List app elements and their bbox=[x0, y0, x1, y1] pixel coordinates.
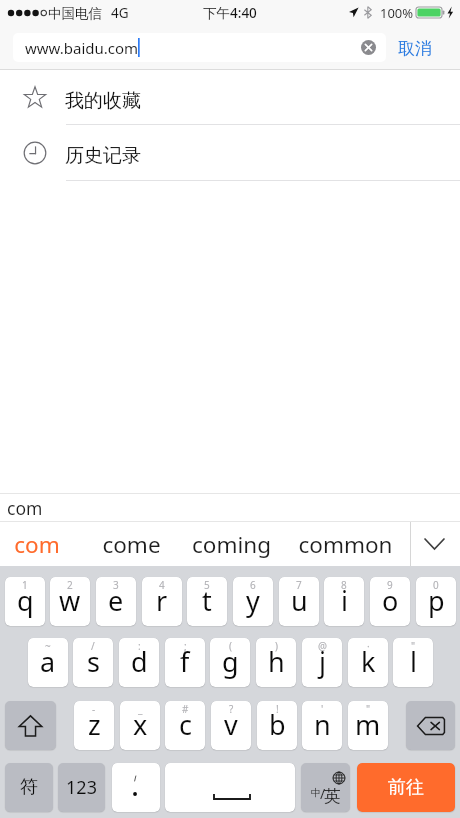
staticText: v bbox=[224, 706, 238, 743]
staticText: g bbox=[222, 643, 239, 680]
button[interactable]: 0 bbox=[416, 577, 456, 626]
button[interactable]: Shift bbox=[5, 701, 56, 750]
staticText: ( bbox=[229, 639, 232, 653]
staticText: 123 bbox=[66, 775, 97, 800]
staticText: · bbox=[367, 639, 370, 653]
staticText: s bbox=[87, 643, 100, 680]
staticText: 中 bbox=[311, 786, 321, 799]
button[interactable]: " bbox=[348, 701, 388, 750]
button[interactable]: " bbox=[393, 638, 433, 687]
button[interactable]: 前往 bbox=[357, 763, 455, 812]
button[interactable]: _ bbox=[120, 701, 160, 750]
staticText: ! bbox=[276, 702, 279, 716]
button[interactable]: 7 bbox=[279, 577, 319, 626]
staticText: 8 bbox=[341, 578, 347, 592]
button[interactable]: ? bbox=[211, 701, 251, 750]
button[interactable]: 5 bbox=[187, 577, 227, 626]
staticText: r bbox=[156, 582, 168, 619]
button[interactable]: come bbox=[71, 522, 191, 566]
staticText: d bbox=[131, 643, 148, 680]
staticText: 取消 bbox=[398, 38, 432, 59]
staticText: j bbox=[319, 643, 326, 680]
staticText: " bbox=[366, 702, 371, 716]
button[interactable]: : bbox=[119, 638, 159, 687]
button[interactable]: 我的收藏 bbox=[0, 70, 460, 125]
staticText: z bbox=[88, 706, 101, 743]
staticText: x bbox=[133, 706, 148, 743]
button[interactable]: 123 bbox=[58, 763, 105, 812]
button[interactable]: More candidates bbox=[411, 522, 460, 566]
button[interactable]: 符 bbox=[5, 763, 53, 812]
staticText: : bbox=[138, 639, 141, 653]
staticText: _ bbox=[138, 702, 143, 716]
button[interactable]: 2 bbox=[50, 577, 90, 626]
staticText: t bbox=[202, 582, 212, 619]
staticText: " bbox=[411, 639, 416, 653]
staticText: m bbox=[355, 706, 381, 743]
button[interactable]: ! bbox=[257, 701, 297, 750]
staticText: 2 bbox=[67, 578, 73, 592]
button[interactable]: ( bbox=[210, 638, 250, 687]
staticText: p bbox=[428, 582, 445, 619]
button[interactable]: 取消 bbox=[396, 32, 434, 65]
staticText: ) bbox=[275, 639, 278, 653]
button[interactable]: / bbox=[73, 638, 113, 687]
staticText: 英 bbox=[324, 786, 341, 807]
staticText: 6 bbox=[250, 578, 256, 592]
staticText: n bbox=[314, 706, 331, 743]
button[interactable]: # bbox=[165, 701, 205, 750]
staticText: 9 bbox=[387, 578, 393, 592]
staticText: 4 bbox=[159, 578, 165, 592]
button[interactable]: Switch input language bbox=[301, 763, 350, 812]
staticText: ~ bbox=[45, 639, 51, 653]
staticText: e bbox=[108, 582, 124, 619]
button[interactable]: ) bbox=[256, 638, 296, 687]
button[interactable]: @ bbox=[302, 638, 342, 687]
button[interactable]: - bbox=[74, 701, 114, 750]
button[interactable]: Period bbox=[112, 763, 160, 812]
staticText: f bbox=[180, 643, 190, 680]
staticText: q bbox=[17, 582, 34, 619]
staticText: common bbox=[298, 529, 393, 560]
staticText: 5 bbox=[204, 578, 210, 592]
button[interactable]: 6 bbox=[233, 577, 273, 626]
button[interactable]: coming bbox=[171, 522, 291, 566]
button[interactable]: ; bbox=[165, 638, 205, 687]
staticText: 符 bbox=[20, 776, 38, 799]
button[interactable]: 4 bbox=[142, 577, 182, 626]
button[interactable]: 3 bbox=[96, 577, 136, 626]
button[interactable]: common bbox=[285, 522, 405, 566]
button[interactable]: Space bbox=[165, 763, 295, 812]
button[interactable]: 历史记录 bbox=[0, 125, 460, 181]
staticText: 历史记录 bbox=[65, 144, 141, 168]
staticText: ' bbox=[321, 702, 324, 716]
button[interactable]: 8 bbox=[324, 577, 364, 626]
staticText: come bbox=[102, 529, 161, 560]
button[interactable]: 1 bbox=[5, 577, 45, 626]
staticText: l bbox=[410, 643, 417, 680]
staticText: # bbox=[182, 702, 189, 716]
button[interactable]: · bbox=[348, 638, 388, 687]
staticText: c bbox=[179, 706, 192, 743]
staticText: i bbox=[341, 582, 348, 619]
staticText: w bbox=[59, 582, 81, 619]
staticText: a bbox=[40, 643, 56, 680]
staticText: h bbox=[268, 643, 285, 680]
button[interactable]: Backspace bbox=[406, 701, 455, 750]
staticText: u bbox=[291, 582, 308, 619]
staticText: @ bbox=[318, 639, 327, 653]
button[interactable]: www.baidu.com bbox=[13, 33, 386, 62]
button[interactable]: 9 bbox=[370, 577, 410, 626]
button[interactable]: ~ bbox=[28, 638, 68, 687]
button[interactable]: com bbox=[0, 522, 97, 566]
staticText: - bbox=[92, 702, 96, 716]
staticText: k bbox=[361, 643, 376, 680]
staticText: b bbox=[269, 706, 286, 743]
staticText: com bbox=[14, 529, 60, 560]
button[interactable]: Clear text bbox=[361, 40, 376, 55]
staticText: 4G bbox=[111, 4, 129, 22]
staticText: com bbox=[7, 496, 43, 520]
staticText: 下午4:40 bbox=[203, 4, 257, 22]
button[interactable]: ' bbox=[302, 701, 342, 750]
staticText: ? bbox=[229, 702, 234, 716]
